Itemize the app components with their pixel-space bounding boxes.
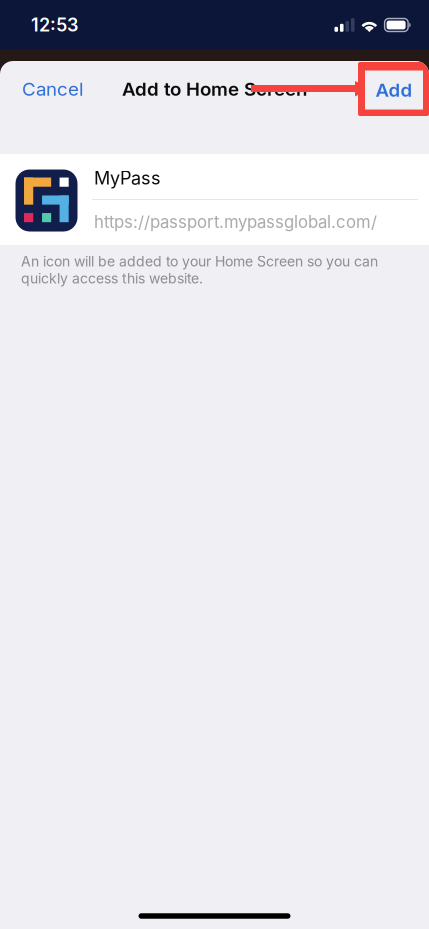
staticText: Add	[375, 79, 412, 101]
staticText: Add	[370, 78, 407, 100]
staticText: https://passport.mypassglobal.com/	[94, 212, 377, 232]
button[interactable]: Add	[356, 67, 429, 111]
staticText: Cancel	[22, 78, 84, 100]
staticText: Add to Home Screen	[122, 78, 307, 100]
staticText: MyPass	[94, 167, 161, 189]
button[interactable]: Cancel	[0, 67, 98, 111]
staticText: An icon will be added to your Home Scree…	[21, 253, 378, 287]
staticText: 12:53	[31, 14, 78, 36]
